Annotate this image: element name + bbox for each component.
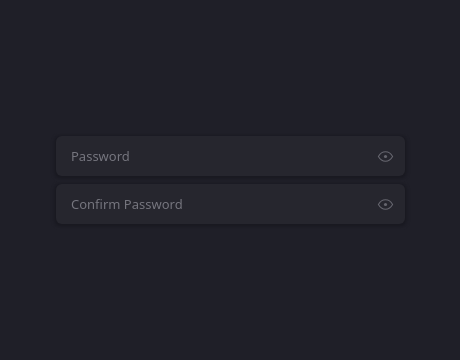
staticText: Password xyxy=(71,147,130,165)
staticText: Confirm Password xyxy=(71,195,183,213)
button[interactable]: Confirm Password xyxy=(56,184,405,224)
button[interactable]: Show password xyxy=(373,192,397,216)
button[interactable]: Password xyxy=(56,136,405,176)
button[interactable]: Show password xyxy=(373,144,397,168)
